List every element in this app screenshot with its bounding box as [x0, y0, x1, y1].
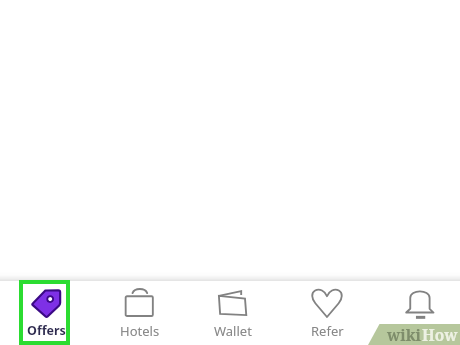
- staticText: Hotels: [120, 322, 160, 340]
- button[interactable]: Alerts: [373, 281, 460, 345]
- staticText: Alerts: [402, 322, 438, 340]
- staticText: wiki: [387, 324, 422, 345]
- staticText: Offers: [27, 322, 66, 339]
- button[interactable]: Refer: [280, 281, 374, 345]
- button[interactable]: Hotels: [93, 281, 187, 345]
- staticText: Wallet: [214, 322, 252, 340]
- button[interactable]: Wallet: [186, 281, 280, 345]
- staticText: How: [422, 324, 458, 345]
- staticText: Refer: [311, 322, 344, 340]
- button[interactable]: Offers: [0, 281, 93, 345]
